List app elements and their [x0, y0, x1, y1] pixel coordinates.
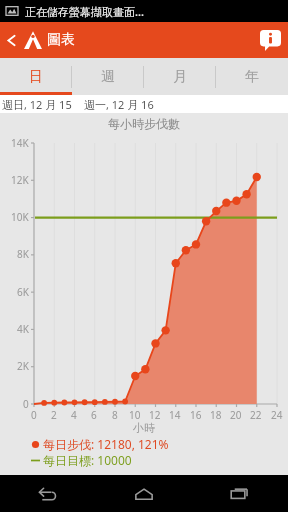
button[interactable]: 週一, 12 月 16 [80, 95, 158, 113]
button[interactable]: Info [253, 22, 288, 58]
staticText: 每日步伐: 12180, 121% [43, 436, 169, 452]
staticText: 每日目標: 10000 [43, 452, 132, 468]
staticText: 月 [173, 68, 187, 86]
staticText: 22 [250, 408, 262, 422]
staticText: 小時 [133, 421, 155, 435]
staticText: 年 [245, 68, 259, 86]
button[interactable]: 日 [0, 58, 72, 95]
staticText: 12K [11, 173, 29, 187]
staticText: 正在儲存螢幕擷取畫面... [25, 4, 144, 19]
staticText: 8 [112, 408, 118, 422]
staticText: 16 [190, 408, 202, 422]
staticText: 14K [11, 136, 29, 150]
staticText: 10 [129, 408, 141, 422]
staticText: 0 [31, 408, 37, 422]
staticText: 10K [11, 210, 29, 224]
staticText: 週日, 12 月 15 [2, 97, 72, 112]
staticText: 6 [91, 408, 97, 422]
staticText: 每小時步伐數 [108, 116, 180, 131]
staticText: 20 [230, 408, 242, 422]
other: Back [5, 34, 18, 47]
button[interactable]: Back [0, 475, 96, 512]
button[interactable]: 週日, 12 月 15 [0, 95, 80, 113]
staticText: 6K [17, 285, 29, 299]
button[interactable]: 月 [144, 58, 216, 95]
staticText: 圖表 [47, 31, 75, 49]
button[interactable]: 年 [216, 58, 288, 95]
staticText: 週一, 12 月 16 [84, 97, 154, 112]
button[interactable]: Recent apps [192, 475, 288, 512]
staticText: 12 [149, 408, 161, 422]
staticText: 4K [17, 322, 29, 336]
staticText: 日 [29, 68, 43, 86]
staticText: 週 [101, 68, 115, 86]
staticText: 8K [17, 247, 29, 261]
staticText: 2K [17, 359, 29, 373]
staticText: 4 [71, 408, 77, 422]
button[interactable]: Back [0, 22, 83, 58]
button[interactable]: 週 [72, 58, 144, 95]
staticText: 2 [51, 408, 57, 422]
staticText: 14 [169, 408, 181, 422]
staticText: 24 [271, 408, 283, 422]
button[interactable]: Home [96, 475, 192, 512]
staticText: 0 [23, 397, 29, 411]
staticText: 18 [210, 408, 222, 422]
